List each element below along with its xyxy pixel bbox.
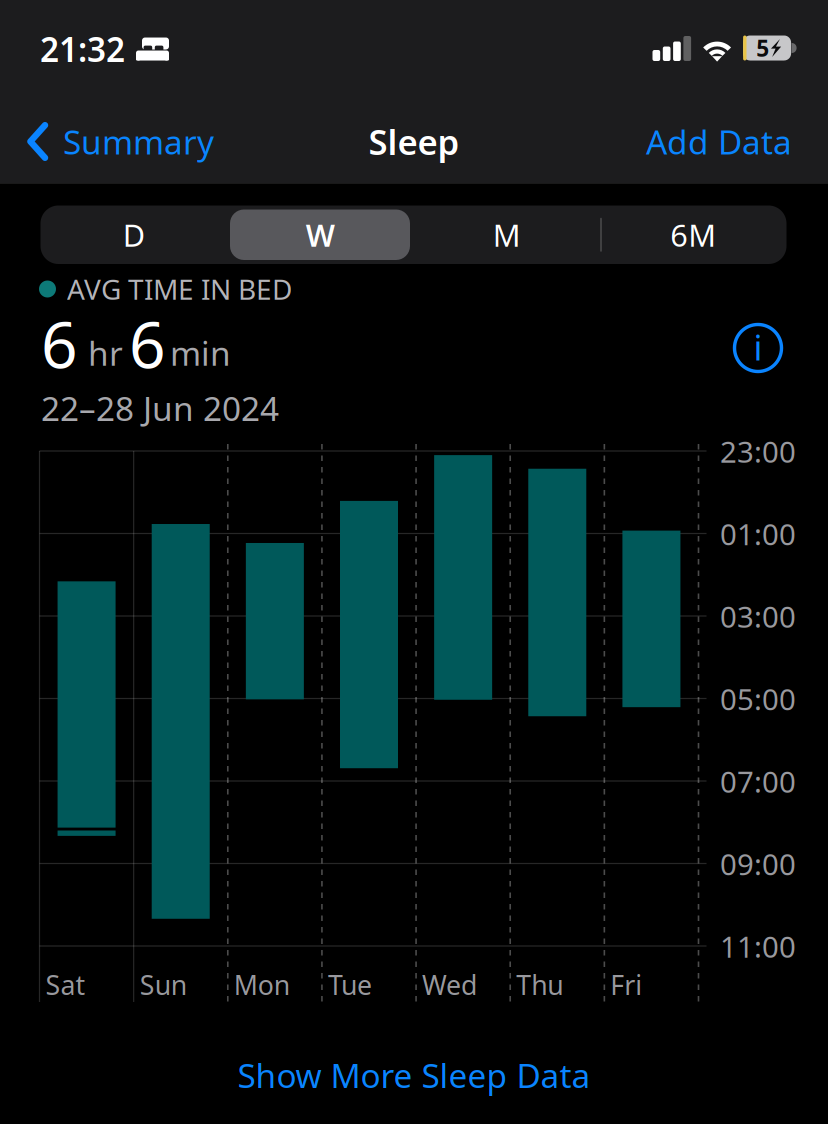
button[interactable]: Add Data [628,110,810,173]
staticText: i [753,324,762,370]
staticText: Add Data [646,119,792,164]
staticText: 05:00 [720,679,796,718]
button[interactable]: W [227,205,413,264]
staticText: Summary [63,119,214,164]
staticText: 07:00 [720,762,796,801]
staticText: W [306,214,335,255]
button[interactable]: About sleep data [728,318,788,378]
button[interactable]: Summary [14,110,230,173]
staticText: 5 [756,33,769,63]
button[interactable]: 6M [600,205,786,264]
staticText: 6 [41,301,78,386]
staticText: Thu [516,967,563,1002]
staticText: 11:00 [720,927,796,966]
staticText: 21:32 [40,27,125,71]
button[interactable]: M [413,205,600,264]
staticText: 6 [129,301,166,386]
staticText: 22–28 Jun 2024 [41,386,279,430]
staticText: M [493,214,521,255]
button[interactable]: Show More Sleep Data [0,1048,828,1102]
staticText: Sat [45,967,85,1002]
staticText: hr [88,331,123,375]
staticText: 6M [670,214,716,255]
staticText: Show More Sleep Data [237,1053,590,1097]
staticText: 03:00 [720,597,796,636]
staticText: Sun [140,967,187,1002]
staticText: W [306,214,335,255]
staticText: 23:00 [720,432,796,471]
staticText: Sleep [368,118,459,164]
staticText: AVG TIME IN BED [67,270,292,308]
staticText: 09:00 [720,844,796,883]
staticText: Tue [328,967,372,1002]
staticText: Fri [610,967,642,1002]
staticText: Mon [234,967,290,1002]
button[interactable]: D [40,205,227,264]
staticText: min [170,331,231,375]
staticText: D [123,214,145,255]
staticText: Wed [422,967,477,1002]
staticText: 01:00 [720,514,796,553]
